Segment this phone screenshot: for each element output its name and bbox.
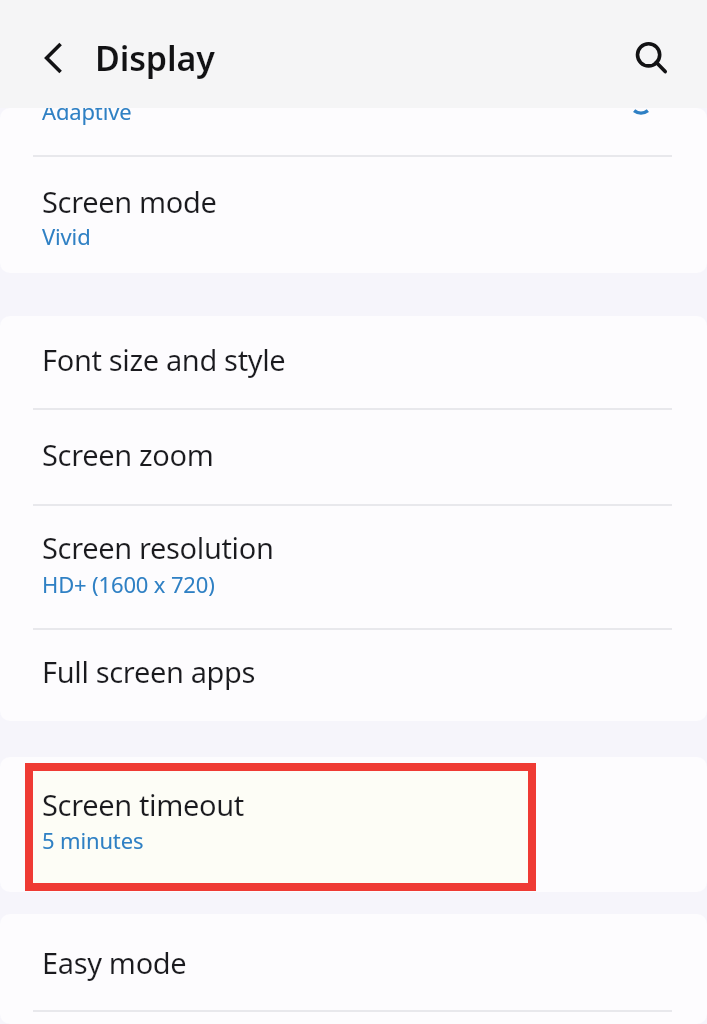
- staticText: Screen resolution: [42, 528, 274, 567]
- button[interactable]: Back: [24, 27, 86, 89]
- staticText: Display: [95, 35, 215, 81]
- staticText: Vivid: [42, 221, 91, 251]
- button[interactable]: Screen timeout: [0, 757, 707, 892]
- button[interactable]: Easy mode: [0, 914, 707, 1012]
- staticText: Adaptive: [42, 108, 132, 126]
- staticText: Screen timeout: [42, 785, 244, 824]
- button[interactable]: Adaptive: [0, 108, 707, 160]
- button[interactable]: Full screen apps: [0, 630, 707, 718]
- staticText: Full screen apps: [42, 652, 256, 691]
- button[interactable]: Search: [618, 24, 680, 86]
- staticText: Font size and style: [42, 340, 286, 379]
- staticText: Screen mode: [42, 182, 217, 221]
- staticText: 5 minutes: [42, 825, 144, 855]
- staticText: Easy mode: [42, 943, 187, 982]
- button[interactable]: Screen zoom: [0, 410, 707, 504]
- staticText: HD+ (1600 x 720): [42, 569, 215, 599]
- button[interactable]: Screen mode: [0, 157, 707, 273]
- button[interactable]: Font size and style: [0, 316, 707, 410]
- staticText: Screen zoom: [42, 435, 214, 474]
- button[interactable]: Screen resolution: [0, 506, 707, 630]
